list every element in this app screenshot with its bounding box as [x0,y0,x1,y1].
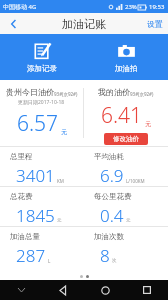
button[interactable]: 平均油耗 [84,147,168,186]
button[interactable]: Hide keyboard [0,280,42,300]
button[interactable]: 我的油价 [84,80,168,146]
button[interactable]: 总里程 [0,147,84,186]
staticText: 6.41 [101,101,143,130]
button[interactable]: 加油总量 [0,227,84,266]
button[interactable]: 加油次数 [84,227,168,266]
staticText: 6.9 [100,164,124,186]
staticText: 8 [100,244,110,266]
staticText: 19:53 [149,3,165,11]
staticText: L [48,258,51,264]
staticText: L/100KM [126,178,145,184]
staticText: 93#(京92#) [130,91,154,97]
button[interactable]: Back [0,13,26,34]
button[interactable]: 加油拍 [84,34,168,80]
staticText: 中国移动 4G [3,3,37,11]
staticText: 平均油耗 [94,152,124,161]
staticText: 元 [145,120,151,128]
button[interactable]: 贵州今日油价 [0,80,83,146]
staticText: 287 [16,244,46,266]
staticText: 更新日期2017-10-18 [18,99,65,106]
button[interactable]: 修改油价 [104,133,148,145]
staticText: 0.4 [100,204,124,226]
staticText: 3401 [16,164,55,186]
staticText: 加油记账 [62,17,106,31]
staticText: 设置 [147,19,163,29]
staticText: 加油拍 [115,64,138,73]
staticText: 元 [57,218,62,224]
button[interactable]: 每公里花费 [84,187,168,226]
staticText: 加油次数 [94,232,124,241]
staticText: 加油总量 [10,232,40,241]
staticText: 修改油价 [113,135,139,143]
button[interactable]: Home [84,280,126,300]
staticText: 贵州今日油价 [6,87,54,97]
staticText: 元 [61,128,67,136]
staticText: 每公里花费 [94,192,132,201]
staticText: 我的油价 [98,87,130,97]
staticText: 添加记录 [27,64,57,73]
staticText: 总里程 [10,152,33,161]
button[interactable]: 添加记录 [0,34,84,80]
staticText: 元 [126,218,131,224]
staticText: 23% [125,3,137,11]
button[interactable]: 总花费 [0,187,84,226]
staticText: 次 [112,258,117,264]
button[interactable]: Back [42,280,84,300]
staticText: 6.57 [17,109,59,138]
button[interactable]: 设置 [147,13,163,34]
staticText: 93#(京92#) [54,91,78,97]
staticText: 总花费 [10,192,33,201]
button[interactable]: Recent apps [126,280,168,300]
staticText: KM [57,178,64,184]
staticText: 1845 [16,204,55,226]
